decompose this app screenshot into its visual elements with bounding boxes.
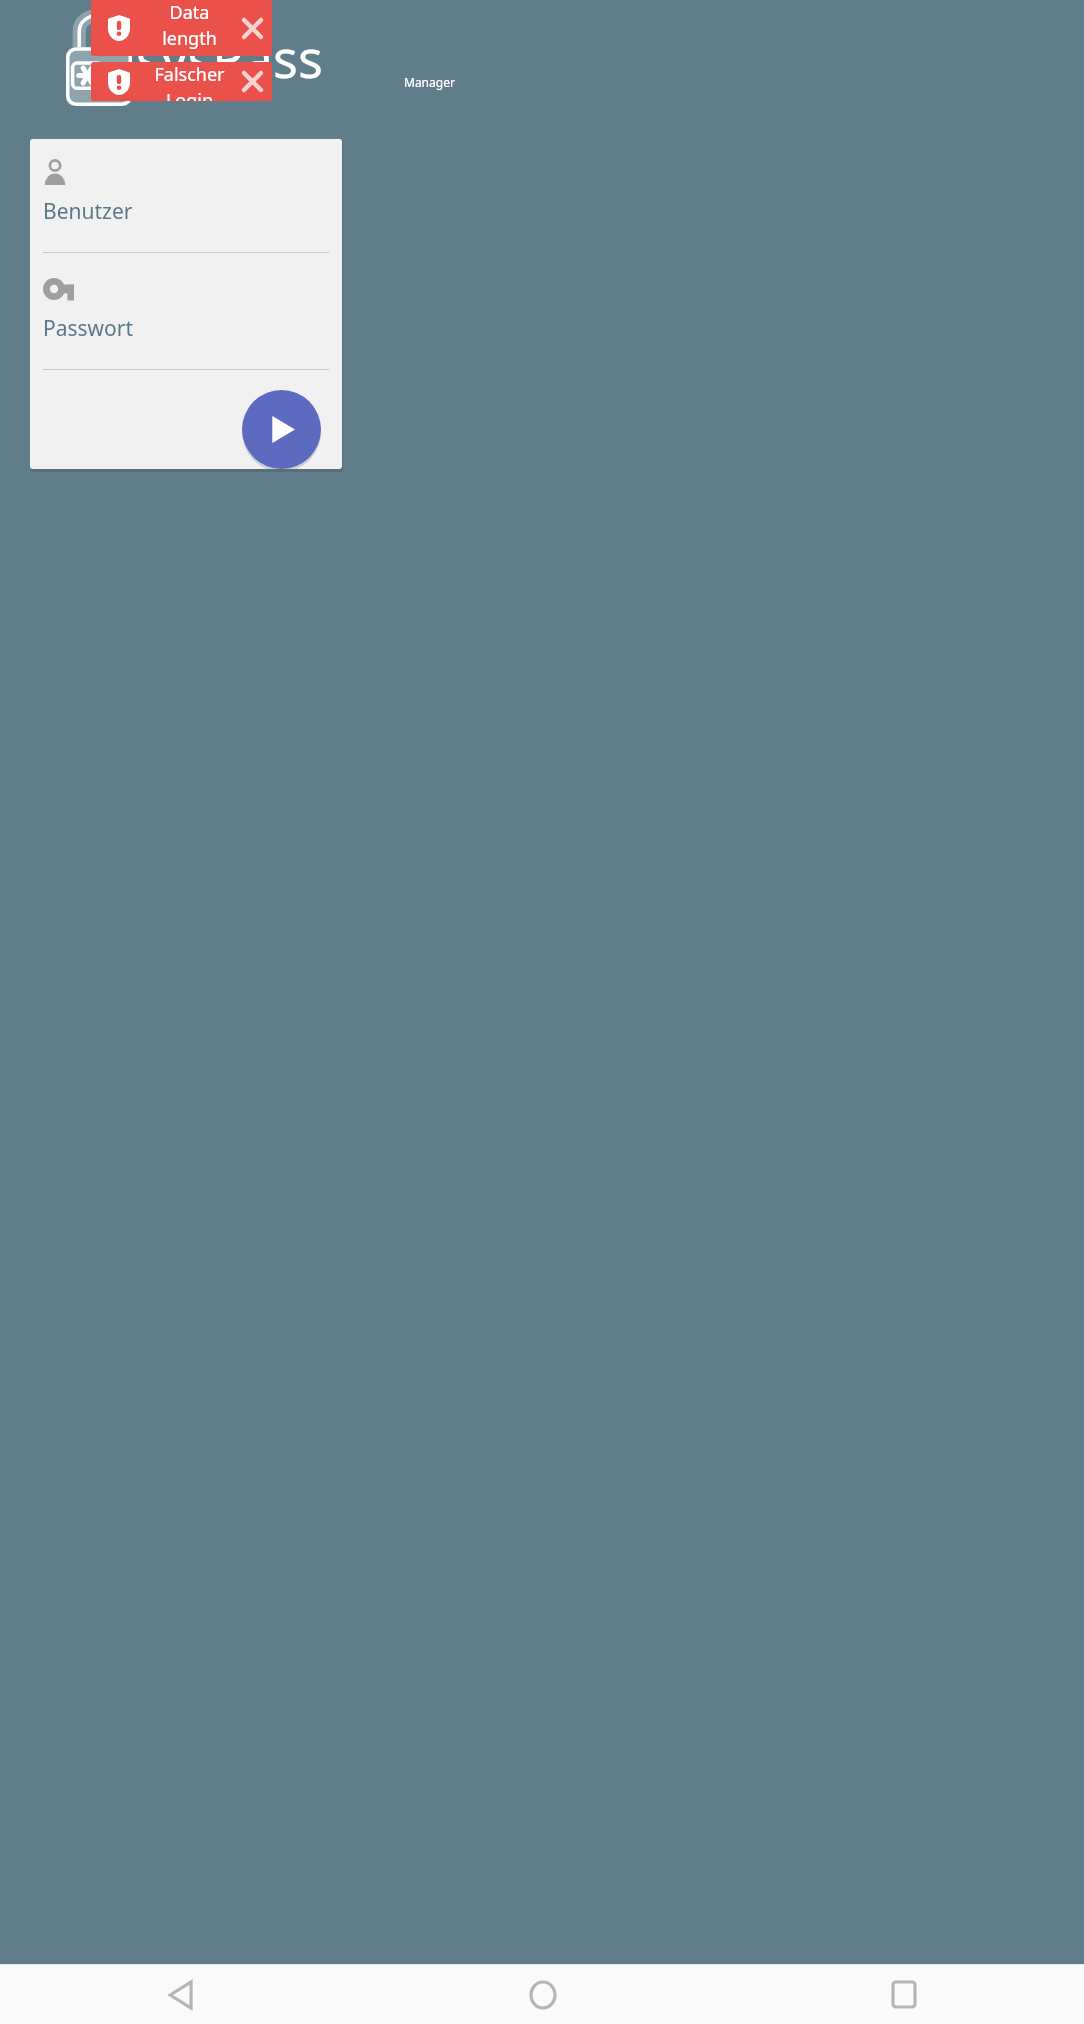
button[interactable]: Passwort	[43, 314, 329, 370]
staticText: sysPass	[136, 22, 323, 93]
button[interactable]: Zurück	[0, 1965, 362, 2024]
staticText: Falscher Login	[147, 62, 232, 101]
staticText: Data length too big	[147, 0, 232, 56]
button[interactable]: Schließen	[232, 0, 272, 56]
staticText: Manager	[404, 74, 455, 90]
staticText: Passwort	[43, 314, 134, 343]
button[interactable]: Startseite	[362, 1965, 723, 2024]
button[interactable]: Data length too big	[91, 0, 272, 56]
button[interactable]: Benutzer	[43, 197, 329, 253]
button[interactable]: Schließen	[232, 62, 272, 101]
staticText: Benutzer	[43, 197, 133, 226]
button[interactable]: Falscher Login	[91, 62, 272, 101]
button[interactable]: Letzte Apps	[723, 1965, 1084, 2024]
button[interactable]: Anmelden	[242, 390, 321, 469]
